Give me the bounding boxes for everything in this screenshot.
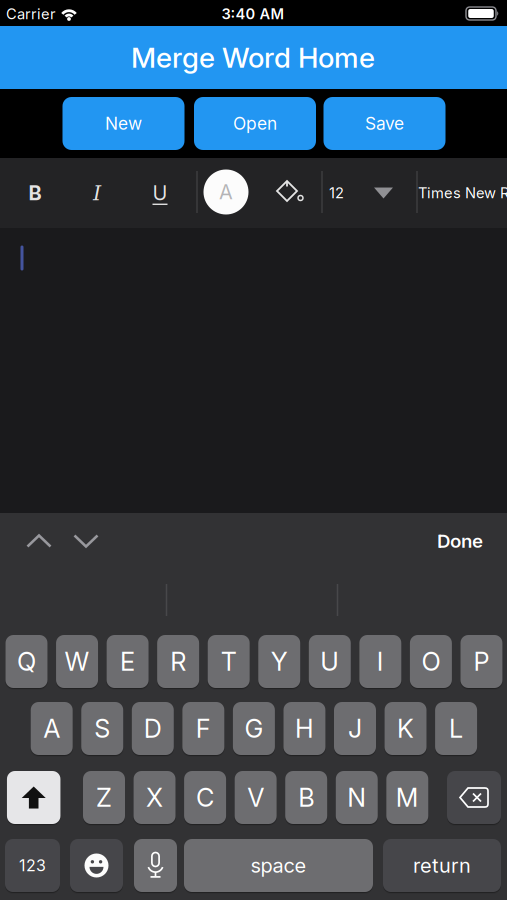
staticText: V: [247, 783, 264, 812]
button[interactable]: R: [157, 635, 199, 688]
button[interactable]: B: [28, 181, 41, 205]
button[interactable]: Text color: [203, 169, 248, 214]
staticText: U: [152, 181, 167, 205]
button[interactable]: Fill color: [273, 178, 303, 208]
button[interactable]: I: [359, 635, 401, 688]
staticText: H: [295, 714, 314, 743]
button[interactable]: A: [31, 702, 73, 755]
button[interactable]: Q: [5, 635, 47, 688]
staticText: E: [120, 647, 135, 676]
button[interactable]: Dictate: [134, 839, 177, 892]
button[interactable]: C: [184, 771, 226, 824]
button[interactable]: Shift: [7, 771, 60, 824]
staticText: Times New Rom: [418, 184, 507, 202]
button[interactable]: M: [386, 771, 428, 824]
staticText: W: [64, 647, 89, 676]
staticText: O: [421, 647, 440, 676]
staticText: M: [396, 783, 419, 812]
button[interactable]: Z: [83, 771, 125, 824]
staticText: G: [244, 714, 263, 743]
button[interactable]: W: [56, 635, 98, 688]
button[interactable]: 123: [5, 839, 60, 892]
button[interactable]: E: [107, 635, 149, 688]
staticText: P: [473, 647, 489, 676]
staticText: S: [94, 714, 110, 743]
staticText: space: [250, 854, 306, 877]
staticText: A: [43, 714, 60, 743]
button[interactable]: Y: [258, 635, 300, 688]
staticText: R: [170, 647, 186, 676]
button[interactable]: Font size: [329, 184, 393, 202]
staticText: T: [221, 647, 237, 676]
button[interactable]: O: [410, 635, 452, 688]
button[interactable]: return: [383, 839, 501, 892]
button[interactable]: Delete: [447, 771, 501, 824]
staticText: J: [348, 714, 362, 743]
button[interactable]: T: [208, 635, 250, 688]
staticText: Q: [17, 647, 36, 676]
staticText: U: [320, 647, 339, 676]
button[interactable]: L: [435, 702, 477, 755]
button[interactable]: X: [134, 771, 176, 824]
staticText: I: [377, 647, 384, 676]
button[interactable]: G: [233, 702, 275, 755]
button[interactable]: Emoji: [70, 839, 123, 892]
button[interactable]: U: [152, 181, 167, 205]
button[interactable]: Open: [194, 97, 316, 150]
staticText: return: [413, 854, 471, 877]
staticText: Z: [96, 783, 112, 812]
staticText: B: [28, 181, 41, 205]
staticText: I: [93, 181, 101, 205]
button[interactable]: F: [182, 702, 224, 755]
staticText: N: [347, 783, 366, 812]
staticText: A: [219, 180, 233, 204]
button[interactable]: B: [285, 771, 327, 824]
button[interactable]: Next field: [73, 534, 99, 548]
button[interactable]: U: [309, 635, 351, 688]
staticText: B: [298, 783, 314, 812]
staticText: 3:40 AM: [221, 5, 284, 23]
staticText: New: [105, 113, 142, 134]
staticText: 12: [329, 184, 344, 202]
button[interactable]: J: [334, 702, 376, 755]
staticText: Save: [365, 113, 404, 134]
staticText: Open: [233, 113, 277, 134]
button[interactable]: Previous field: [26, 534, 52, 548]
staticText: 123: [19, 856, 46, 875]
staticText: X: [146, 783, 163, 812]
staticText: C: [196, 783, 214, 812]
staticText: D: [144, 714, 162, 743]
staticText: F: [196, 714, 211, 743]
button[interactable]: Font family: [418, 184, 507, 202]
button[interactable]: H: [283, 702, 325, 755]
button[interactable]: Save: [323, 97, 445, 150]
button[interactable]: space: [184, 839, 373, 892]
staticText: Done: [437, 530, 483, 552]
button[interactable]: I: [93, 181, 101, 205]
staticText: L: [449, 714, 463, 743]
staticText: K: [397, 714, 414, 743]
button[interactable]: V: [235, 771, 277, 824]
button[interactable]: D: [132, 702, 174, 755]
button[interactable]: S: [81, 702, 123, 755]
button[interactable]: N: [336, 771, 378, 824]
staticText: Merge Word Home: [131, 41, 375, 74]
button[interactable]: P: [460, 635, 502, 688]
button[interactable]: Done: [437, 530, 483, 552]
staticText: Carrier: [6, 5, 56, 23]
button[interactable]: New: [62, 97, 184, 150]
staticText: Y: [271, 647, 288, 676]
button[interactable]: K: [384, 702, 426, 755]
